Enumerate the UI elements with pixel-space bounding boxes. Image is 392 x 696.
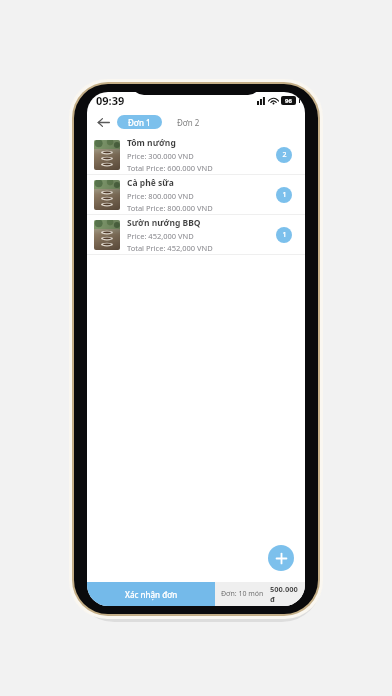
staticText: Price: 300.000 VND <box>127 151 194 161</box>
button[interactable]: Xác nhận đơn <box>87 582 215 606</box>
staticText: Cà phê sữa <box>127 177 174 189</box>
button[interactable]: Add item <box>268 545 294 571</box>
button[interactable]: Đơn 1 <box>117 115 162 129</box>
staticText: 09:39 <box>96 93 125 108</box>
button[interactable]: 2 <box>276 147 292 163</box>
staticText: 2 <box>282 150 287 160</box>
button[interactable]: Đơn 2 <box>173 115 204 129</box>
button[interactable]: Tôm nướng <box>87 135 305 174</box>
staticText: Đơn: 10 món <box>221 589 264 599</box>
staticText: Sườn nướng BBQ <box>127 217 201 229</box>
staticText: Total Price: 452,000 VND <box>127 243 213 253</box>
button[interactable]: Back <box>93 112 113 132</box>
staticText: Tôm nướng <box>127 137 176 149</box>
staticText: 1 <box>282 230 287 240</box>
staticText: 1 <box>282 190 287 200</box>
staticText: Total Price: 600.000 VND <box>127 163 213 173</box>
button[interactable]: Đơn: 10 món <box>215 582 305 606</box>
button[interactable]: 1 <box>276 187 292 203</box>
staticText: Price: 800.000 VND <box>127 191 194 201</box>
staticText: Đơn 2 <box>177 117 200 128</box>
button[interactable]: Sườn nướng BBQ <box>87 215 305 254</box>
button[interactable]: 1 <box>276 227 292 243</box>
staticText: 96 <box>285 97 292 105</box>
staticText: Price: 452,000 VND <box>127 231 194 241</box>
staticText: 500.000đ <box>270 584 299 604</box>
staticText: Xác nhận đơn <box>125 589 178 600</box>
staticText: Đơn 1 <box>128 117 151 128</box>
staticText: Total Price: 800.000 VND <box>127 203 213 213</box>
button[interactable]: Cà phê sữa <box>87 175 305 214</box>
